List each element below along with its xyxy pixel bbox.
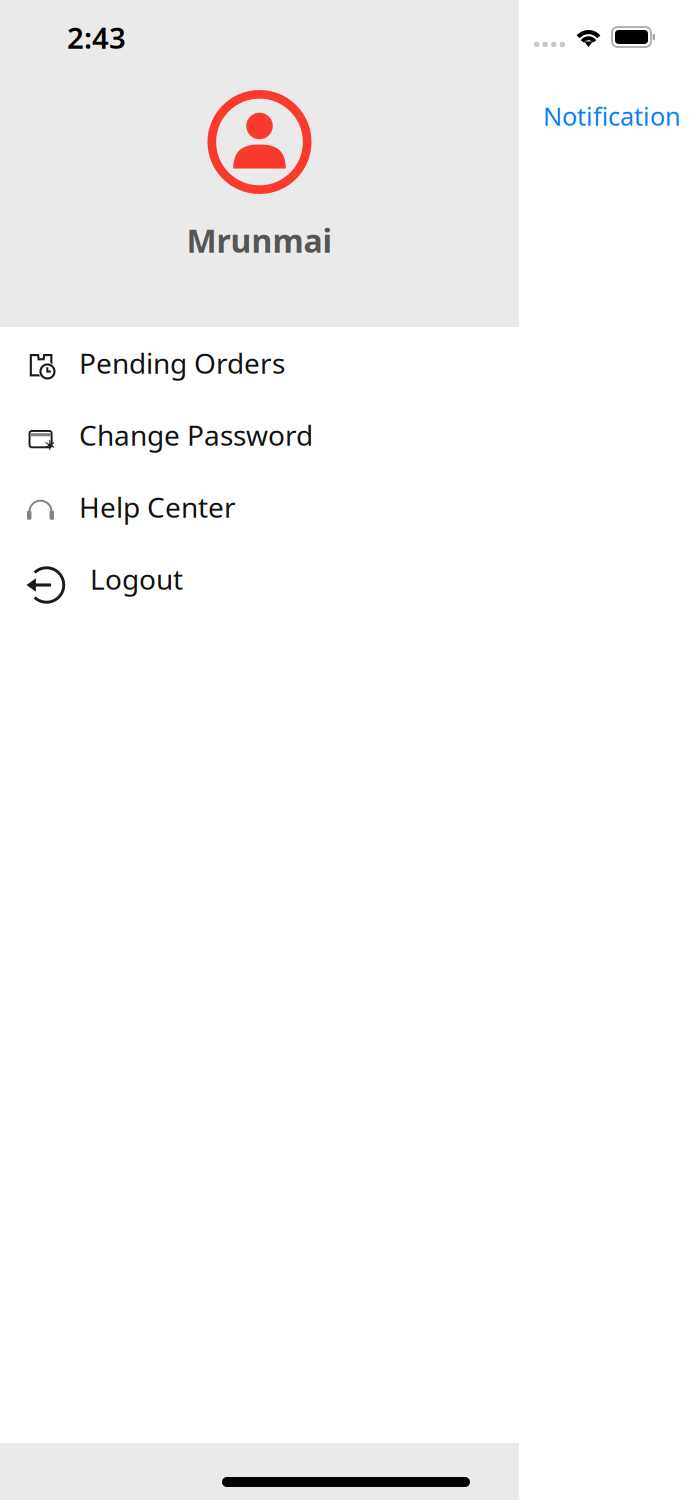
button[interactable]: Notification: [535, 90, 689, 142]
staticText: Help Center: [79, 488, 236, 526]
staticText: Mrunmai: [186, 219, 332, 261]
button[interactable]: Pending Orders: [0, 327, 519, 399]
button[interactable]: Logout: [0, 543, 519, 615]
staticText: Change Password: [79, 416, 313, 454]
staticText: Logout: [90, 560, 183, 598]
staticText: Notification: [543, 99, 681, 133]
staticText: 2:43: [67, 18, 126, 57]
button[interactable]: Help Center: [0, 471, 519, 543]
button[interactable]: Change Password: [0, 399, 519, 471]
staticText: Pending Orders: [79, 344, 285, 382]
